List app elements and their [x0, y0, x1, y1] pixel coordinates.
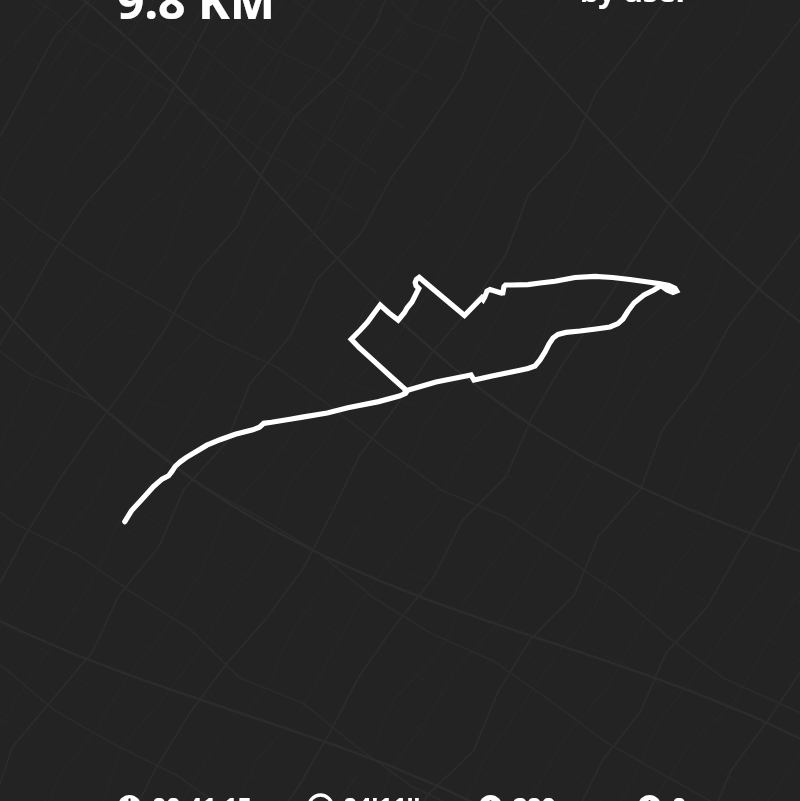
staticText: 9.8 KM [117, 0, 276, 33]
button[interactable]: Duration 00:41:15 [118, 789, 252, 801]
staticText: 290 [513, 789, 556, 801]
staticText: 00:41:15 [152, 789, 252, 801]
button[interactable]: Activity route map [0, 0, 800, 801]
button[interactable]: 290 calories [479, 789, 556, 801]
button[interactable]: Elevation gain 0 [638, 789, 687, 801]
staticText: by user [580, 0, 690, 11]
staticText: 04'11'' [343, 789, 421, 801]
button[interactable]: Average pace 4 minutes 11 seconds [309, 789, 421, 801]
staticText: 0 [672, 789, 687, 801]
